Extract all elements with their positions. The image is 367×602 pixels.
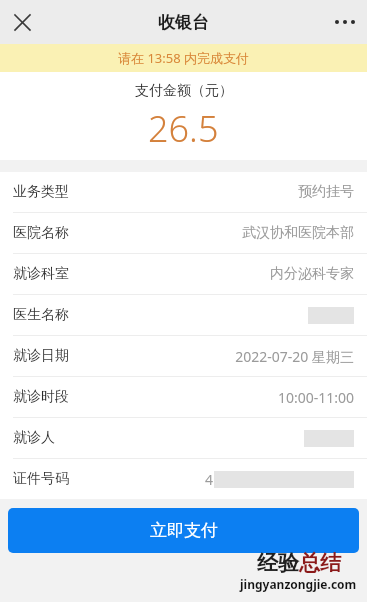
staticText: 10:00-11:00 <box>277 388 354 407</box>
staticText: jingyanzongjie.com <box>240 576 357 592</box>
staticText: 业务类型 <box>13 183 69 201</box>
button[interactable]: 立即支付 <box>8 508 359 553</box>
staticText: 支付金额（元） <box>135 82 233 100</box>
staticText: 预约挂号 <box>298 183 354 201</box>
staticText: 经验 <box>257 550 299 576</box>
button[interactable]: 就诊人 <box>0 418 367 458</box>
staticText: 就诊时段 <box>13 388 69 406</box>
staticText: 就诊人 <box>13 429 55 447</box>
staticText: 武汉协和医院本部 <box>242 224 354 242</box>
staticText: 4 <box>205 470 214 489</box>
staticText: 内分泌科专家 <box>270 265 354 283</box>
button[interactable]: 就诊科室 <box>0 254 367 294</box>
staticText: 医院名称 <box>13 224 69 242</box>
staticText: 26.5 <box>148 104 219 153</box>
staticText: 总结 <box>299 550 341 576</box>
button[interactable]: More options <box>323 0 367 44</box>
button[interactable]: 就诊日期 <box>0 336 367 376</box>
button[interactable]: Close <box>0 0 44 44</box>
button[interactable]: 医院名称 <box>0 213 367 253</box>
button[interactable]: 证件号码 <box>0 459 367 499</box>
button[interactable]: 业务类型 <box>0 172 367 212</box>
staticText: 2022-07-20 星期三 <box>235 347 354 366</box>
staticText: 医生名称 <box>13 306 69 324</box>
staticText: 就诊日期 <box>13 347 69 365</box>
button[interactable]: 医生名称 <box>0 295 367 335</box>
staticText: 立即支付 <box>150 520 218 541</box>
staticText: 收银台 <box>158 12 209 33</box>
button[interactable]: 就诊时段 <box>0 377 367 417</box>
staticText: 就诊科室 <box>13 265 69 283</box>
staticText: 证件号码 <box>13 470 69 488</box>
staticText: 请在 13:58 内完成支付 <box>118 49 249 67</box>
